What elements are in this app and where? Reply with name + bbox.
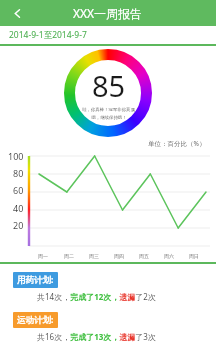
staticText: 2014-9-1至2014-9-7 — [9, 29, 87, 41]
staticText: 20 — [13, 219, 24, 231]
staticText: 周二 — [64, 253, 74, 259]
staticText: 40 — [13, 202, 24, 214]
staticText: 60 — [13, 184, 24, 196]
staticText: 用药计划: — [17, 274, 54, 286]
staticText: 80 — [13, 167, 24, 179]
staticText: 哦，继续保持哦！ — [91, 115, 127, 121]
staticText: 100 — [8, 150, 24, 162]
staticText: 周日 — [189, 253, 199, 259]
staticText: 周六 — [164, 253, 174, 259]
staticText: 周五 — [139, 253, 149, 259]
button[interactable]: Back — [0, 0, 34, 26]
staticText: 哇，你真棒！冠军非你莫属 — [82, 107, 135, 113]
staticText: 85 — [92, 66, 126, 105]
staticText: 共14次，完成了12次，遗漏了2次 — [37, 291, 156, 302]
button[interactable]: 运动计划: — [13, 312, 58, 328]
staticText: 周三 — [89, 253, 99, 259]
staticText: 周一 — [38, 253, 48, 259]
staticText: 单位：百分比（%） — [148, 139, 206, 148]
staticText: 周四 — [114, 253, 124, 259]
button[interactable]: 用药计划: — [13, 272, 58, 288]
staticText: 运动计划: — [17, 314, 54, 326]
staticText: 共16次，完成了13次，遗漏了3次 — [37, 331, 156, 342]
staticText: XXX一周报告 — [73, 5, 143, 21]
